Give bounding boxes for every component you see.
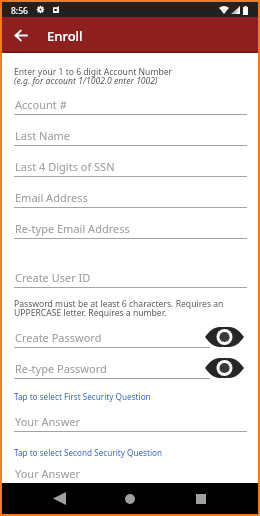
button[interactable]: Create Password: [2, 327, 258, 353]
staticText: Password must be at least 6 characters. …: [14, 300, 260, 318]
staticText: Enroll: [47, 27, 83, 45]
staticText: Your Answer: [15, 466, 81, 481]
button[interactable]: Your Answer: [2, 411, 258, 437]
staticText: Enter your 1 to 6 digit Account Number: [14, 68, 173, 77]
staticText: Last Name: [15, 128, 71, 143]
button[interactable]: Create User ID: [2, 267, 258, 293]
staticText: Re-type Email Address: [15, 221, 130, 236]
button[interactable]: Last 4 Digits of SSN: [2, 156, 258, 182]
button[interactable]: Back: [43, 483, 75, 514]
button[interactable]: Recents: [185, 483, 217, 514]
button[interactable]: Tap to select Second Security Question: [14, 447, 163, 458]
button[interactable]: Email Address: [2, 187, 258, 213]
staticText: (e.g. for account 1/1002.0 enter 1002): [14, 77, 158, 86]
staticText: Account #: [15, 97, 67, 112]
staticText: Create User ID: [15, 270, 91, 285]
button[interactable]: Home: [114, 483, 146, 514]
button[interactable]: Back: [6, 21, 35, 50]
button[interactable]: Tap to select First Security Question: [14, 391, 151, 402]
staticText: Your Answer: [15, 414, 81, 429]
button[interactable]: Re-type Password: [2, 358, 258, 384]
button[interactable]: Re-type Email Address: [2, 218, 258, 244]
staticText: Re-type Password: [15, 361, 107, 376]
button[interactable]: Toggle password visibility: [204, 357, 245, 379]
staticText: 8:56: [11, 5, 28, 17]
staticText: Last 4 Digits of SSN: [15, 159, 115, 174]
button[interactable]: Your Answer: [2, 463, 258, 489]
staticText: Create Password: [15, 330, 102, 345]
button[interactable]: Toggle password visibility: [204, 326, 245, 348]
staticText: Email Address: [15, 190, 88, 205]
button[interactable]: Account #: [2, 94, 258, 120]
button[interactable]: Last Name: [2, 125, 258, 151]
